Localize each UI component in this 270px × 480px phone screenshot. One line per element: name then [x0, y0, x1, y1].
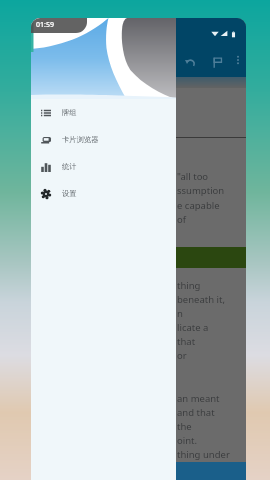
staticText: ssumption: [177, 184, 225, 197]
button[interactable]: More options: [230, 52, 246, 68]
staticText: beneath it,: [177, 293, 225, 306]
staticText: 设置: [62, 189, 77, 198]
staticText: 统计: [62, 162, 77, 171]
button[interactable]: Undo: [180, 52, 200, 72]
staticText: thing under: [177, 448, 230, 461]
staticText: thing: [177, 279, 201, 292]
staticText: oint.: [177, 434, 198, 447]
staticText: "all too: [177, 170, 209, 183]
staticText: of: [177, 213, 187, 226]
staticText: e capable: [177, 199, 220, 212]
button[interactable]: 牌组: [31, 99, 176, 126]
staticText: n: [177, 307, 183, 320]
staticText: that: [177, 335, 196, 348]
button[interactable]: 卡片浏览器: [31, 126, 176, 153]
staticText: or: [177, 349, 187, 362]
staticText: the: [177, 420, 192, 433]
staticText: 牌组: [62, 108, 77, 117]
button[interactable]: 1 天: [77, 462, 246, 480]
staticText: 01:59: [36, 20, 54, 30]
staticText: 卡片浏览器: [62, 135, 99, 144]
staticText: and that: [177, 406, 215, 419]
staticText: an meant: [177, 392, 220, 405]
button[interactable]: 统计: [31, 153, 176, 180]
button[interactable]: 设置: [31, 180, 176, 207]
staticText: licate a: [177, 321, 209, 334]
button[interactable]: Flag: [207, 52, 227, 72]
